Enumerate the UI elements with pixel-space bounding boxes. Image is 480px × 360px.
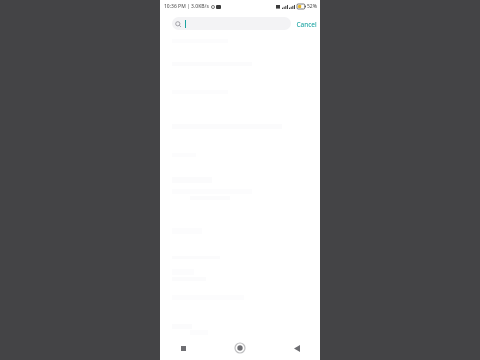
staticText: 10:36 PM | 3.0KB/s xyxy=(164,3,209,10)
button[interactable]: Recent apps xyxy=(174,339,192,357)
staticText: Cancel xyxy=(296,20,317,29)
button[interactable]: Cancel xyxy=(296,16,317,32)
button[interactable] xyxy=(172,17,291,30)
staticText: 52% xyxy=(307,3,317,10)
button[interactable]: Back xyxy=(288,339,306,357)
button[interactable]: Home xyxy=(231,339,249,357)
